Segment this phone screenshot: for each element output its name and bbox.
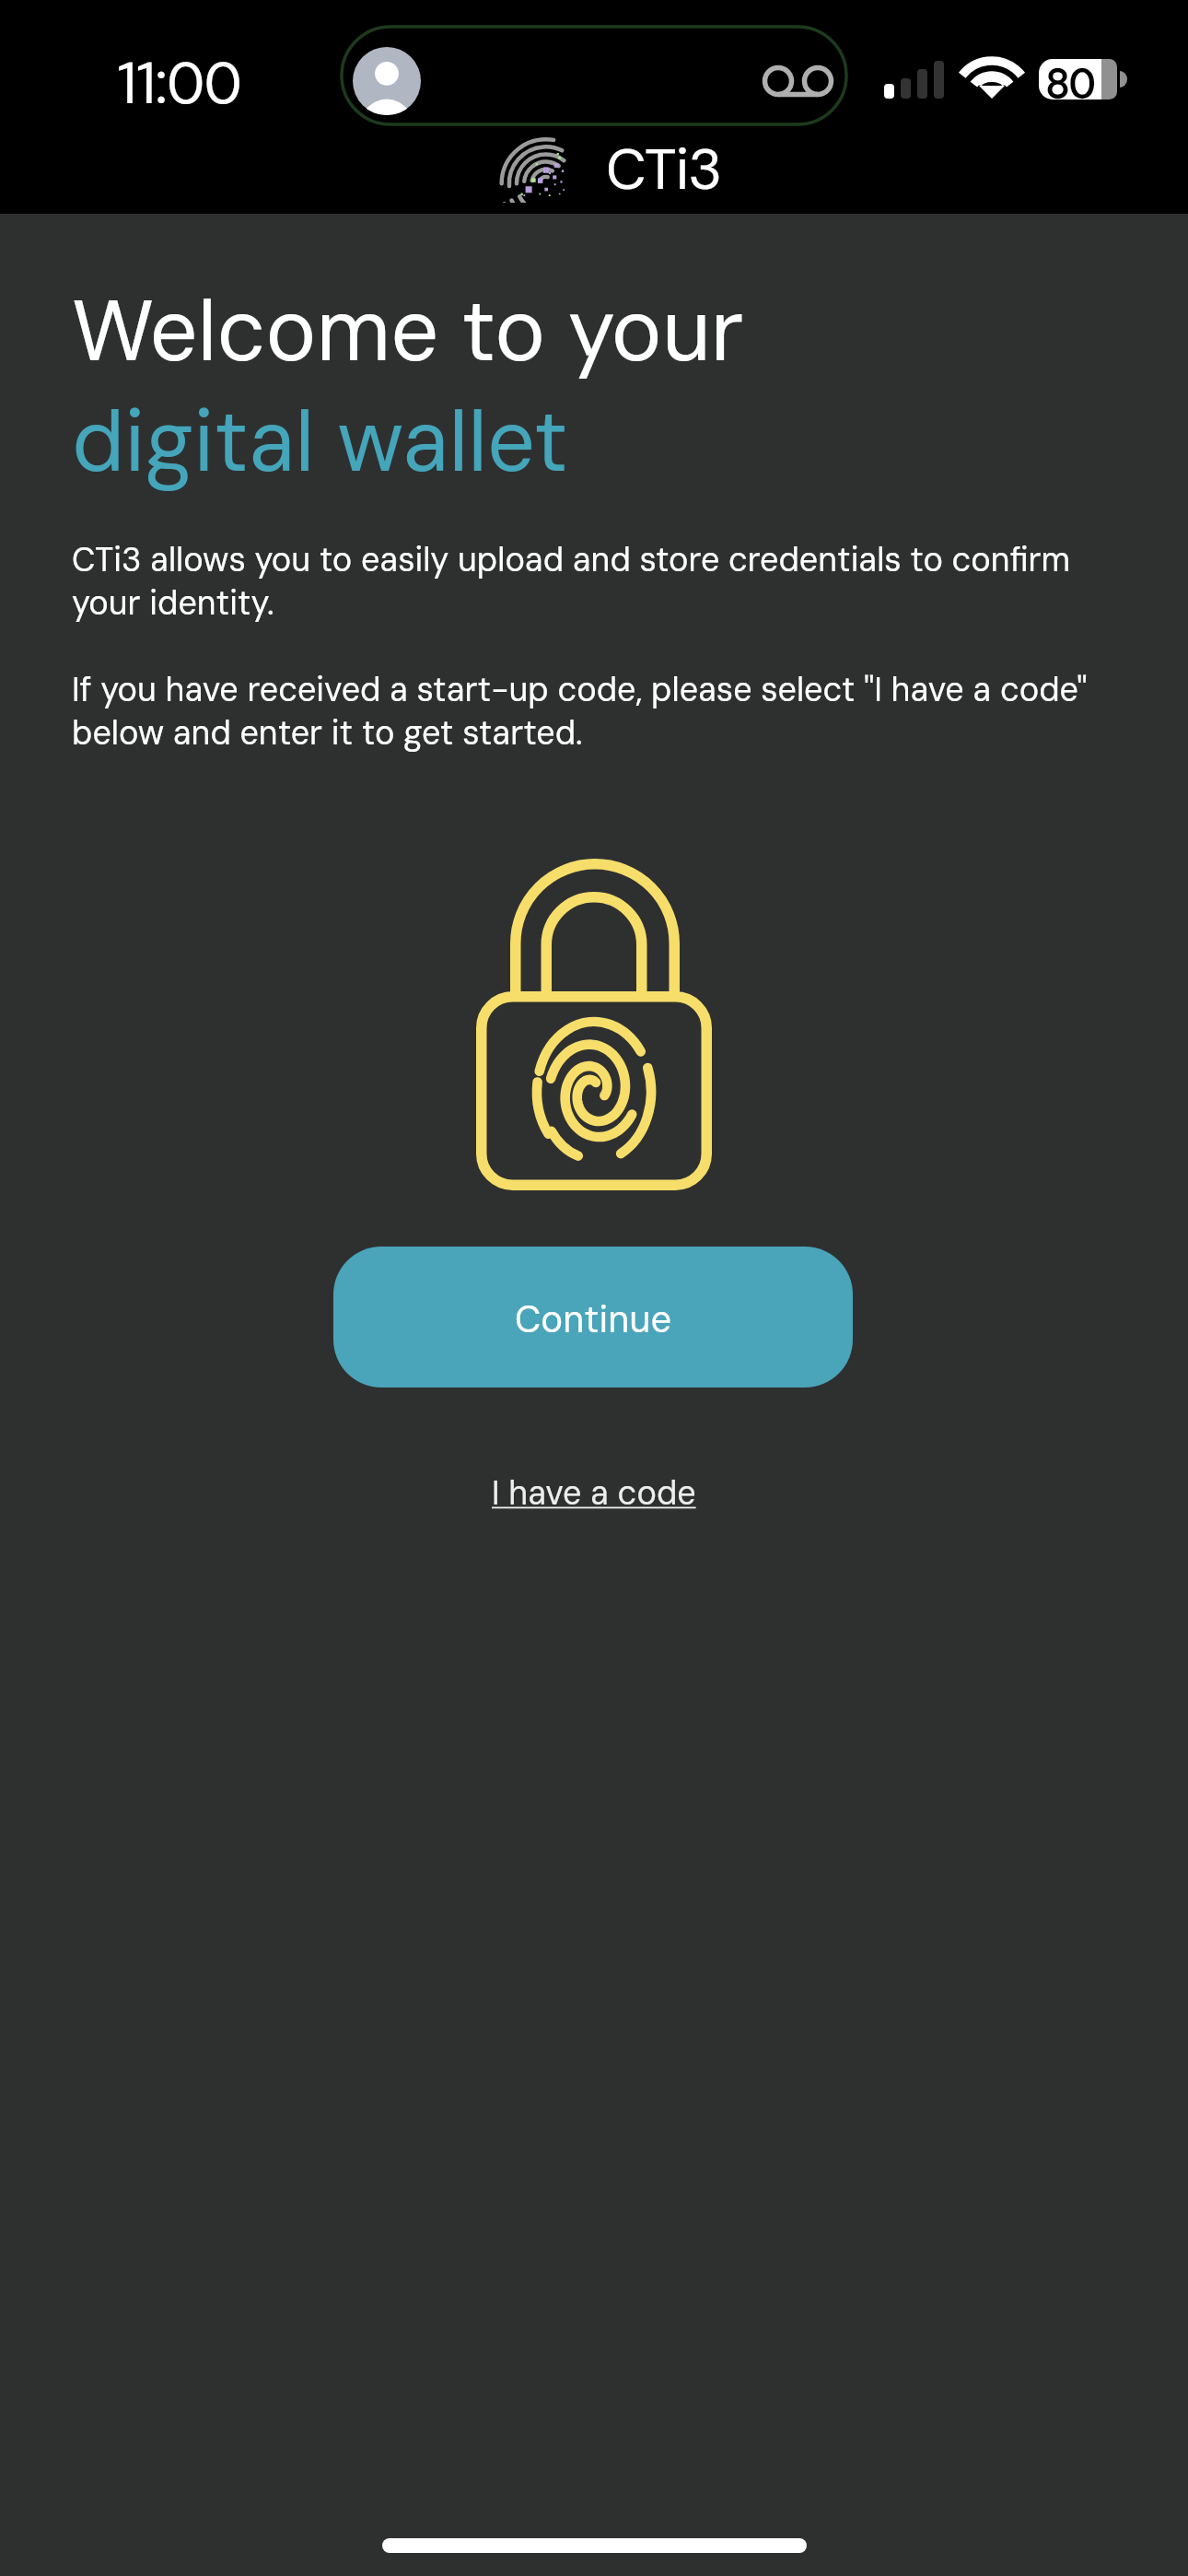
staticText: 80 <box>1039 57 1101 110</box>
staticText: CTi3 <box>606 132 722 206</box>
button[interactable]: Continue <box>333 1247 853 1388</box>
staticText: digital wallet <box>72 387 568 498</box>
staticText: If you have received a start-up code, pl… <box>72 668 1126 755</box>
staticText: I have a code <box>492 1471 696 1515</box>
staticText: Welcome to your <box>72 276 744 387</box>
staticText: CTi3 allows you to easily upload and sto… <box>72 538 1126 625</box>
staticText: Continue <box>515 1295 672 1343</box>
button[interactable]: I have a code <box>456 1451 732 1534</box>
staticText: 11:00 <box>117 46 241 122</box>
